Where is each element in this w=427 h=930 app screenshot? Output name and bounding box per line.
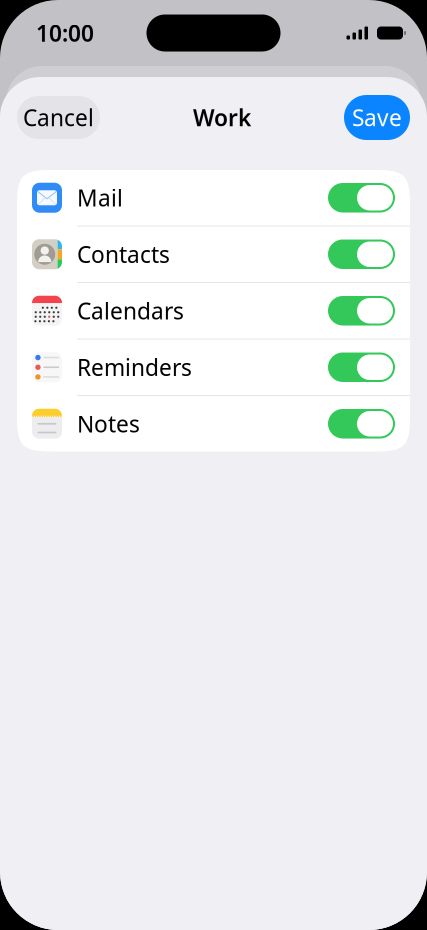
button[interactable]: Toggle [328,239,395,269]
button[interactable]: Toggle [328,183,395,212]
button[interactable]: Notes [17,396,410,451]
staticText: Contacts [77,239,170,269]
button[interactable]: Toggle [328,296,395,325]
staticText: Mail [77,183,123,213]
button[interactable]: Cancel [17,96,100,139]
button[interactable]: Toggle [328,409,395,438]
button[interactable]: Save [344,95,410,140]
staticText: 10:00 [36,18,94,48]
button[interactable]: Mail [17,170,410,225]
button[interactable]: Contacts [17,226,410,282]
staticText: Calendars [77,296,184,326]
staticText: Save [352,102,402,132]
staticText: Reminders [77,352,192,382]
staticText: Work [193,102,251,132]
button[interactable]: Calendars [17,283,410,338]
button[interactable]: Toggle [328,352,395,382]
button[interactable]: Reminders [17,339,410,395]
staticText: Notes [77,409,140,439]
staticText: Cancel [23,102,94,132]
